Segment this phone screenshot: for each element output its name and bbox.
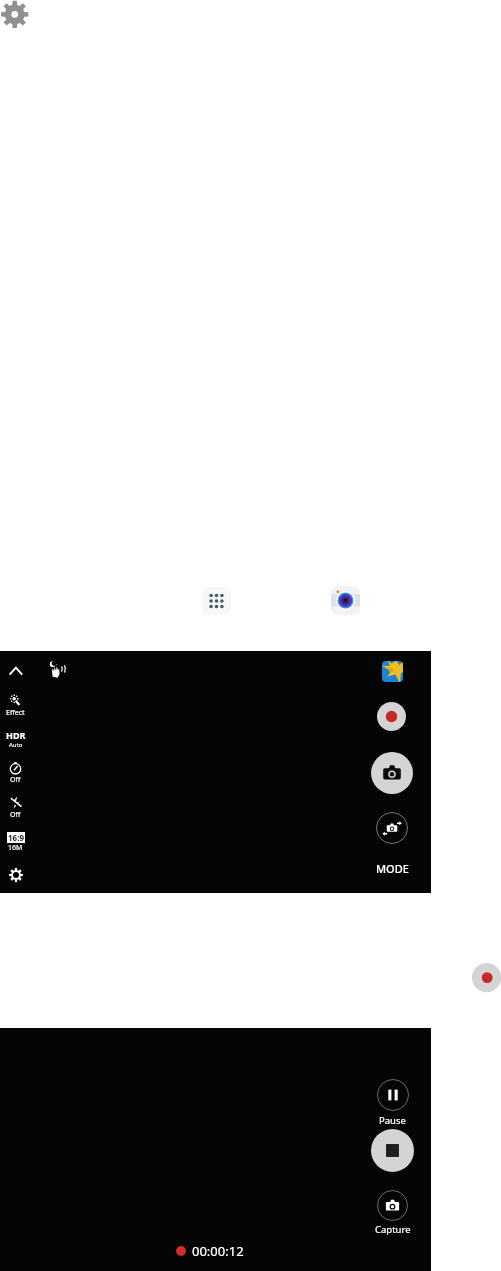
staticText: Pause <box>379 1114 406 1127</box>
button[interactable]: Expand options <box>8 665 24 677</box>
button[interactable]: Record video <box>377 702 406 731</box>
button[interactable] <box>202 587 231 615</box>
staticText: MODE <box>376 861 409 876</box>
staticText: 16:9 <box>8 832 24 843</box>
button[interactable]: Stop recording <box>371 1129 414 1172</box>
button[interactable]: Off <box>0 796 31 820</box>
button[interactable]: Settings <box>0 0 29 29</box>
button[interactable]: HDR <box>0 729 31 749</box>
button[interactable]: Gallery <box>382 661 403 682</box>
button[interactable] <box>331 586 360 615</box>
staticText: 00:00:12 <box>192 1242 244 1260</box>
staticText: Off <box>10 775 21 785</box>
staticText: Off <box>10 810 21 820</box>
button[interactable]: Switch camera <box>376 812 408 844</box>
button[interactable]: Pause <box>372 1079 413 1127</box>
button[interactable]: Take photo <box>371 752 413 794</box>
staticText: Effect <box>6 708 25 718</box>
button[interactable]: Camera settings <box>9 868 23 882</box>
button[interactable]: Effect <box>0 694 31 718</box>
staticText: 16M <box>8 843 23 853</box>
button[interactable]: Off <box>0 761 31 785</box>
button[interactable]: 16:9 <box>0 832 31 853</box>
staticText: Capture <box>375 1223 411 1236</box>
button[interactable]: MODE <box>372 859 413 877</box>
button[interactable]: Capture <box>372 1190 413 1236</box>
staticText: HDR <box>6 729 26 741</box>
staticText: Auto <box>9 741 23 749</box>
button[interactable]: Record video <box>472 963 501 992</box>
